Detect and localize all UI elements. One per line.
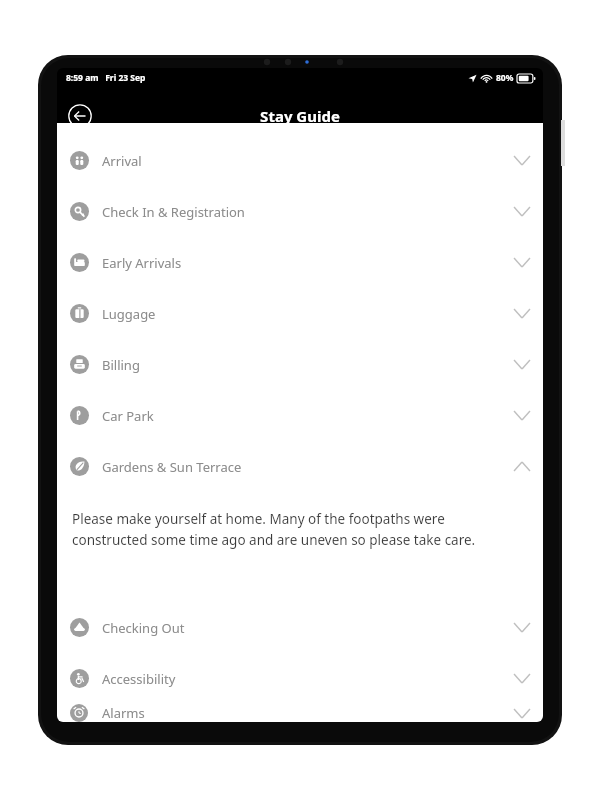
staticText: Luggage [102,305,156,323]
button[interactable]: Checking Out [57,602,543,653]
staticText: Accessibility [102,670,176,688]
staticText: 8:59 am Fri 23 Sep [66,72,146,84]
staticText: Billing [102,356,140,374]
button[interactable]: Early Arrivals [57,237,543,288]
staticText: Gardens & Sun Terrace [102,458,242,476]
button[interactable]: Arrival [57,135,543,186]
staticText: 80% [496,72,514,84]
button[interactable]: Check In & Registration [57,186,543,237]
button[interactable]: Accessibility [57,653,543,704]
staticText: Early Arrivals [102,254,182,272]
staticText: Alarms [102,704,145,722]
button[interactable]: Alarms [57,704,543,722]
staticText: Checking Out [102,619,185,637]
staticText: Check In & Registration [102,203,245,221]
staticText: Car Park [102,407,154,425]
button[interactable]: Billing [57,339,543,390]
staticText: Stay Guide [260,106,340,126]
button[interactable]: Car Park [57,390,543,441]
button[interactable]: Luggage [57,288,543,339]
staticText: Please make yourself at home. Many of th… [72,510,521,549]
staticText: Arrival [102,152,142,170]
button[interactable]: Back [68,104,92,128]
button[interactable]: Gardens & Sun Terrace [57,441,543,492]
